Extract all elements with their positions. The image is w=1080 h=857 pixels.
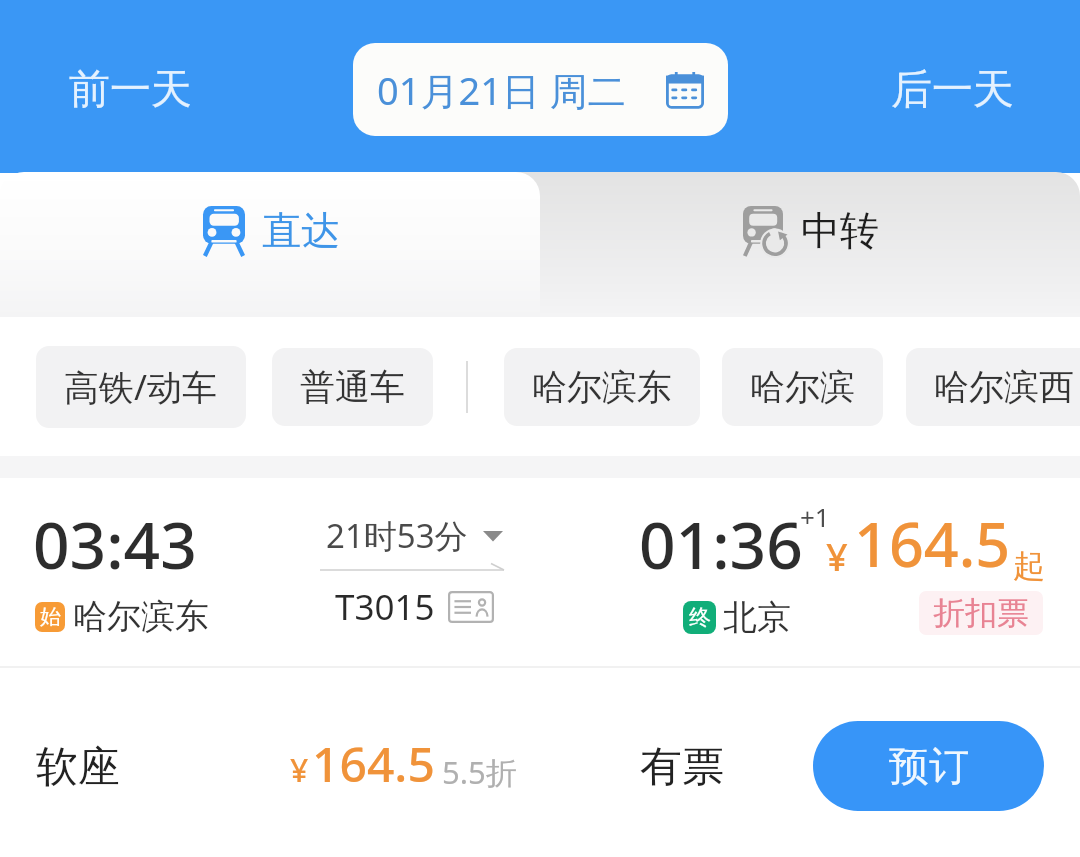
staticText: 折扣票 bbox=[933, 593, 1029, 633]
button[interactable]: 哈尔滨西 bbox=[906, 348, 1080, 426]
staticText: 哈尔滨东 bbox=[73, 595, 209, 638]
button[interactable]: 后一天 bbox=[875, 52, 1030, 128]
other: Transfer trains bbox=[743, 206, 786, 256]
button[interactable]: 前一天 bbox=[53, 52, 208, 128]
staticText: 01:36 bbox=[639, 501, 803, 588]
staticText: 03:43 bbox=[33, 501, 197, 588]
staticText: ¥ bbox=[826, 530, 848, 582]
staticText: 中转 bbox=[801, 206, 879, 255]
staticText: 后一天 bbox=[891, 64, 1014, 116]
other: Expand bbox=[483, 528, 503, 544]
staticText: 终 bbox=[689, 604, 711, 632]
button[interactable]: 哈尔滨 bbox=[722, 348, 883, 426]
button[interactable]: 普通车 bbox=[272, 348, 433, 426]
other: ID card required bbox=[448, 591, 494, 623]
button[interactable]: Direct trains bbox=[0, 172, 540, 317]
staticText: 始 bbox=[40, 604, 61, 630]
staticText: 有票 bbox=[640, 741, 724, 794]
staticText: 21时53分 bbox=[326, 513, 468, 558]
staticText: 哈尔滨 bbox=[750, 365, 855, 409]
staticText: 哈尔滨西 bbox=[934, 365, 1074, 409]
button[interactable]: Transfer trains bbox=[468, 172, 1080, 317]
staticText: 前一天 bbox=[69, 64, 192, 116]
staticText: 01月21日 周二 bbox=[377, 64, 626, 116]
button[interactable]: 01月21日 周二 bbox=[353, 43, 728, 136]
staticText: 软座 bbox=[36, 741, 120, 794]
staticText: +1 bbox=[800, 499, 830, 534]
staticText: 普通车 bbox=[300, 365, 405, 409]
button[interactable]: 03:43 bbox=[0, 478, 1080, 666]
staticText: 起 bbox=[1013, 546, 1045, 586]
other: Pick date bbox=[666, 72, 704, 108]
button[interactable]: 哈尔滨东 bbox=[504, 348, 700, 426]
staticText: T3015 bbox=[335, 583, 435, 631]
other: Direct trains bbox=[203, 206, 245, 256]
button[interactable]: 高铁/动车 bbox=[36, 346, 246, 428]
staticText: 164.5 bbox=[312, 731, 435, 796]
staticText: 5.5折 bbox=[442, 751, 517, 793]
staticText: 预订 bbox=[889, 741, 969, 791]
staticText: 北京 bbox=[723, 596, 791, 639]
staticText: 哈尔滨东 bbox=[532, 365, 672, 409]
staticText: ¥ bbox=[290, 748, 309, 792]
button[interactable]: 预订 bbox=[813, 721, 1044, 811]
staticText: 164.5 bbox=[854, 502, 1011, 585]
staticText: 高铁/动车 bbox=[64, 363, 218, 411]
button[interactable]: 21时53分 bbox=[326, 513, 503, 558]
staticText: 直达 bbox=[262, 206, 340, 255]
